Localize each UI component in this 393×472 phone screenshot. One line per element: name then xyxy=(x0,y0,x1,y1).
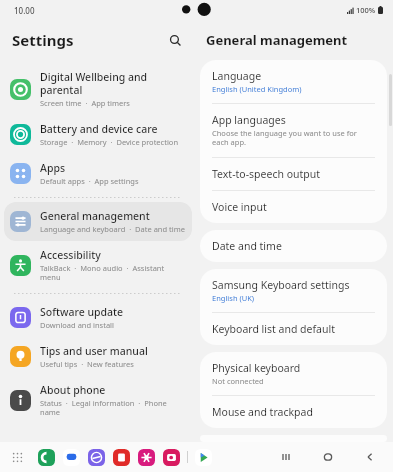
staticText: Language and keyboard · Date and time xyxy=(40,224,185,234)
staticText: Digital Wellbeing and parental controls xyxy=(40,70,186,97)
staticText: App languages xyxy=(212,113,286,127)
staticText: Tips and user manual xyxy=(40,344,148,358)
staticText: English (United Kingdom) xyxy=(212,84,302,94)
button[interactable]: Apps xyxy=(4,154,192,193)
staticText: English (UK) xyxy=(212,293,255,303)
button[interactable]: Date and time xyxy=(200,230,387,262)
button[interactable]: Tips and user manual xyxy=(4,337,192,376)
button[interactable]: Accessibility xyxy=(4,241,192,289)
staticText: Battery and device care xyxy=(40,122,158,136)
staticText: General management xyxy=(40,209,150,223)
staticText: Screen time · App timers xyxy=(40,98,130,108)
button[interactable]: Battery and device care xyxy=(4,115,192,154)
staticText: Useful tips · New features xyxy=(40,359,134,369)
button[interactable]: Phone xyxy=(38,449,55,466)
staticText: Samsung Keyboard settings xyxy=(212,278,350,292)
staticText: Apps xyxy=(40,161,66,175)
staticText: Physical keyboard xyxy=(212,361,301,375)
button[interactable]: All apps xyxy=(8,448,26,466)
staticText: Mouse and trackpad xyxy=(212,405,313,419)
staticText: General management xyxy=(206,31,348,49)
staticText: Not connected xyxy=(212,376,264,386)
staticText: 100% xyxy=(356,5,376,15)
button[interactable]: Software update xyxy=(4,298,192,337)
button[interactable]: Camera xyxy=(163,449,180,466)
button[interactable]: Play Store xyxy=(195,449,212,466)
button[interactable]: Home xyxy=(317,446,339,468)
button[interactable]: Digital Wellbeing and parental controls xyxy=(4,63,192,115)
button[interactable]: Internet xyxy=(88,449,105,466)
staticText: Language xyxy=(212,69,262,83)
staticText: Default apps · App settings xyxy=(40,176,139,186)
button[interactable]: About phone xyxy=(4,376,192,424)
staticText: Choose the language you want to use for … xyxy=(212,128,375,148)
button[interactable]: Notes xyxy=(113,449,130,466)
staticText: 10.00 xyxy=(14,5,35,16)
button[interactable]: Voice input xyxy=(200,191,387,223)
button[interactable]: General management xyxy=(4,202,192,241)
staticText: Voice input xyxy=(212,200,267,214)
staticText: Date and time xyxy=(212,239,282,253)
button[interactable]: Language xyxy=(200,60,387,103)
button[interactable]: Samsung Keyboard settings xyxy=(200,269,387,312)
staticText: Settings xyxy=(12,30,74,50)
staticText: Accessibility xyxy=(40,248,101,262)
button[interactable]: Search xyxy=(164,29,186,51)
staticText: Keyboard list and default xyxy=(212,322,335,336)
button[interactable]: Gallery xyxy=(138,449,155,466)
button[interactable]: Mouse and trackpad xyxy=(200,396,387,428)
button[interactable]: App languages xyxy=(200,104,387,157)
button[interactable]: Physical keyboard xyxy=(200,352,387,395)
staticText: Download and install xyxy=(40,320,114,330)
button[interactable]: Keyboard list and default xyxy=(200,313,387,345)
button[interactable]: Text-to-speech output xyxy=(200,158,387,190)
button[interactable]: Messages xyxy=(63,449,80,466)
staticText: Software update xyxy=(40,305,124,319)
staticText: Status · Legal information · Phone name xyxy=(40,398,186,417)
staticText: About phone xyxy=(40,383,106,397)
staticText: Text-to-speech output xyxy=(212,167,321,181)
button[interactable]: Recents xyxy=(275,446,297,468)
staticText: Storage · Memory · Device protection xyxy=(40,137,179,147)
staticText: TalkBack · Mono audio · Assistant menu xyxy=(40,263,186,282)
button[interactable]: Back xyxy=(359,446,381,468)
